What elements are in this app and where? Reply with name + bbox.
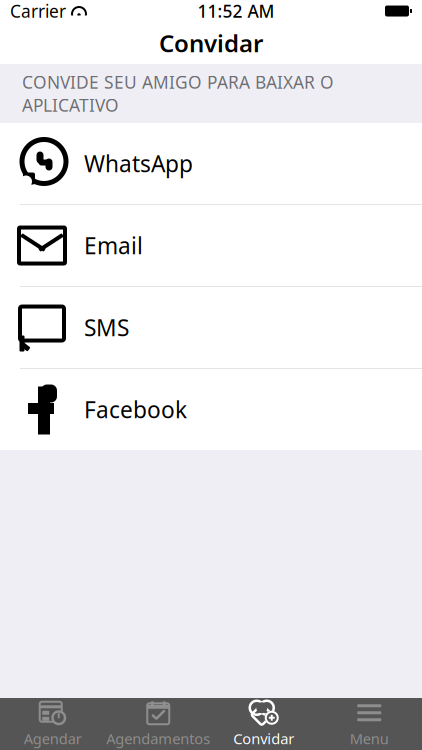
staticText: Email bbox=[84, 230, 143, 260]
button[interactable]: Facebook bbox=[0, 369, 422, 450]
button[interactable]: SMS bbox=[0, 287, 422, 369]
button[interactable]: Menu bbox=[316, 698, 422, 750]
staticText: 11:52 AM bbox=[197, 0, 274, 22]
staticText: SMS bbox=[84, 312, 129, 342]
staticText: Agendar bbox=[24, 729, 82, 748]
button[interactable]: Agendar bbox=[0, 698, 105, 750]
staticText: Convidar bbox=[233, 729, 294, 748]
staticText: Menu bbox=[350, 729, 389, 748]
staticText: Facebook bbox=[84, 394, 187, 424]
staticText: Agendamentos bbox=[106, 729, 210, 748]
staticText: CONVIDE SEU AMIGO PARA BAIXAR O APLICATI… bbox=[22, 70, 334, 116]
staticText: WhatsApp bbox=[84, 148, 193, 178]
staticText: Carrier bbox=[10, 0, 66, 22]
staticText: Convidar bbox=[159, 27, 263, 59]
button[interactable]: WhatsApp bbox=[0, 123, 422, 205]
button[interactable]: Agendamentos bbox=[105, 698, 211, 750]
button[interactable]: Convidar bbox=[211, 698, 316, 750]
button[interactable]: Email bbox=[0, 205, 422, 287]
